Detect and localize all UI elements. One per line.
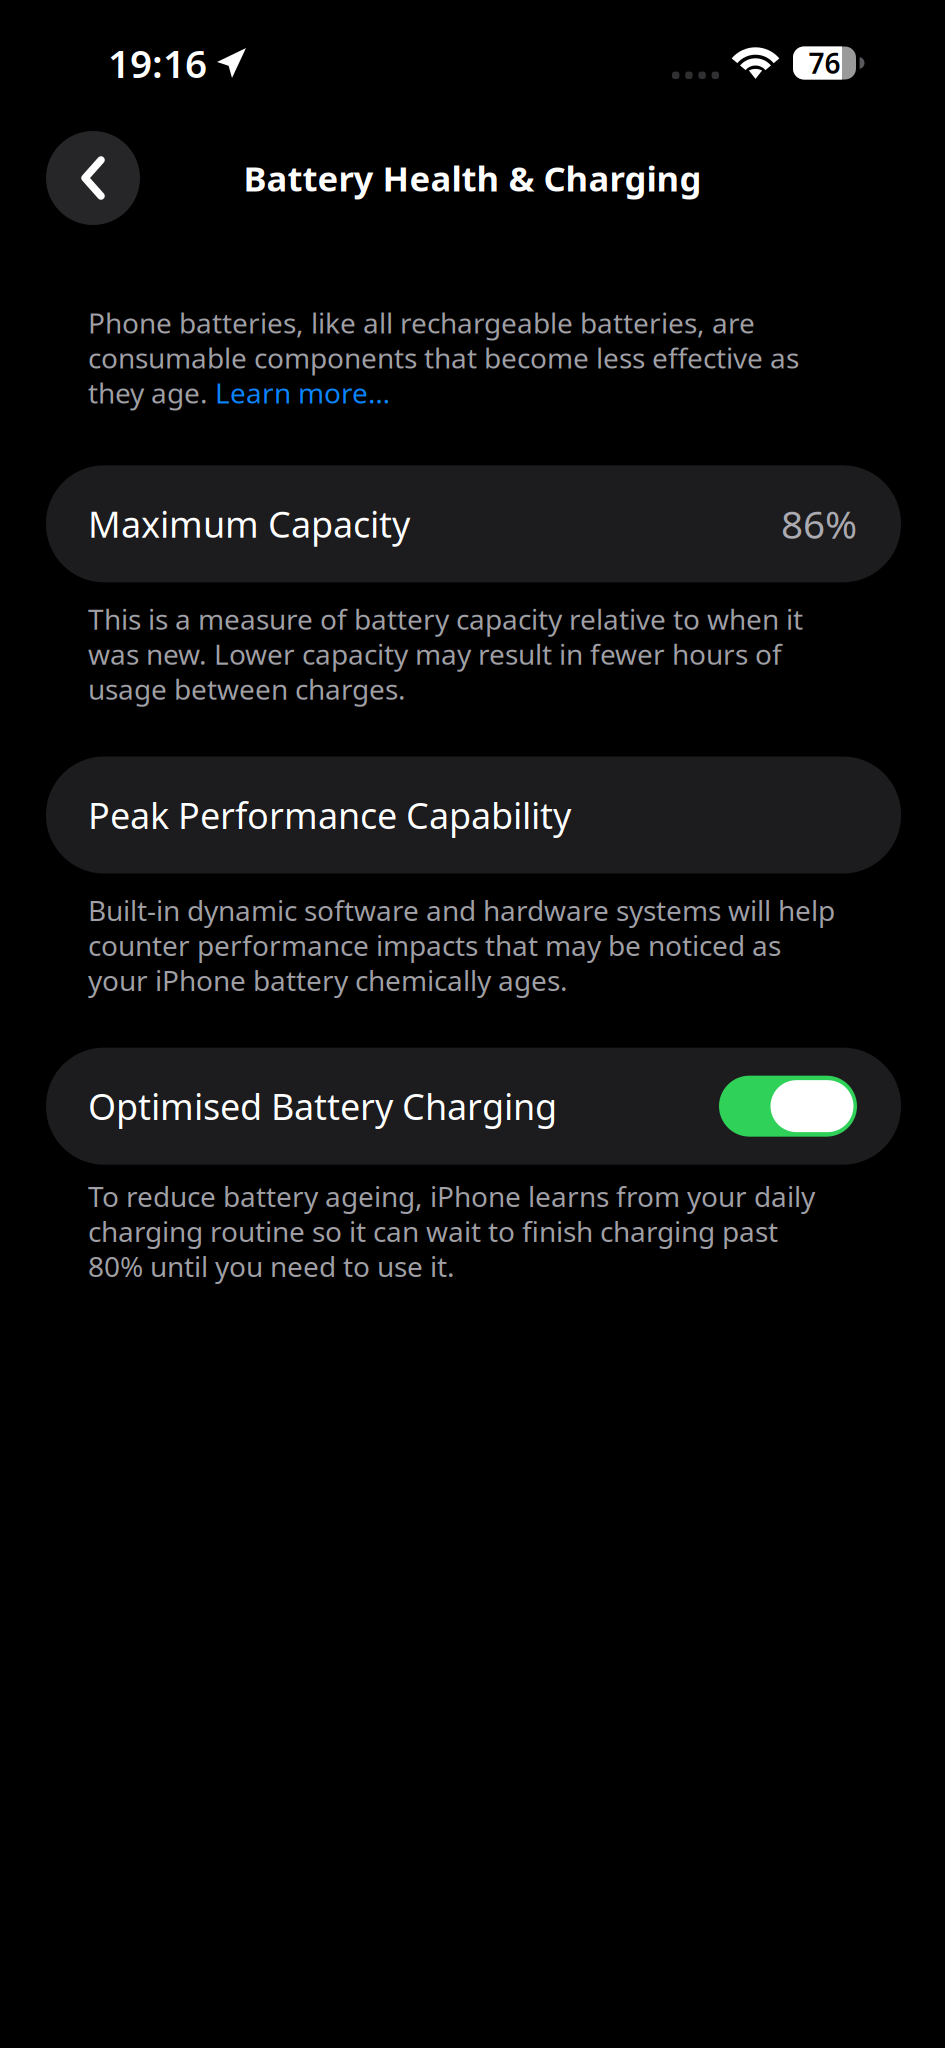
staticText: Learn more… [215, 374, 390, 411]
staticText: This is a measure of battery capacity re… [88, 600, 803, 707]
button[interactable]: Optimised Battery Charging [46, 1048, 901, 1165]
staticText: they age. [88, 374, 215, 411]
button[interactable]: Optimised Battery Charging, on [719, 1076, 857, 1137]
button[interactable]: Peak Performance Capability [46, 756, 901, 873]
button[interactable]: Back [46, 131, 140, 225]
button[interactable]: Maximum Capacity [46, 465, 901, 582]
staticText: 86% [781, 498, 857, 549]
staticText: To reduce battery ageing, iPhone learns … [88, 1178, 815, 1285]
staticText: 19:16 [108, 37, 207, 89]
staticText: Peak Performance Capability [88, 791, 571, 839]
staticText: Maximum Capacity [88, 500, 410, 548]
staticText: Built-in dynamic software and hardware s… [88, 891, 835, 999]
button[interactable]: Learn more… [215, 374, 390, 411]
staticText: Optimised Battery Charging [88, 1082, 557, 1130]
staticText: Phone batteries, like all rechargeable b… [88, 304, 799, 376]
staticText: Battery Health & Charging [243, 155, 701, 201]
staticText: 76 [808, 44, 840, 82]
